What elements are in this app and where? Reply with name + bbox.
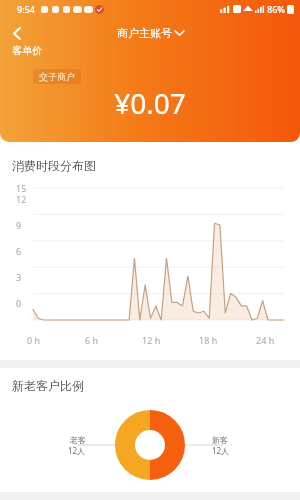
staticText: 6 h bbox=[85, 334, 142, 346]
staticText: 24 h bbox=[256, 334, 290, 346]
staticText: 86% bbox=[267, 3, 285, 15]
staticText: 12 bbox=[16, 193, 27, 205]
staticText: 新客 bbox=[212, 435, 228, 445]
staticText: 3 bbox=[16, 271, 22, 283]
staticText: 12 h bbox=[142, 334, 199, 346]
button[interactable]: 交子商户 bbox=[33, 69, 81, 84]
staticText: 18 h bbox=[199, 334, 256, 346]
staticText: 商户主账号 bbox=[117, 26, 172, 40]
staticText: 0 h bbox=[27, 334, 85, 346]
staticText: 9:54 bbox=[17, 3, 35, 15]
staticText: 老客 bbox=[70, 435, 86, 445]
staticText: 9 bbox=[16, 219, 22, 231]
staticText: 12人 bbox=[68, 445, 86, 456]
staticText: 15 bbox=[16, 182, 27, 194]
staticText: 新老客户比例 bbox=[12, 378, 84, 393]
staticText: 12人 bbox=[212, 445, 230, 456]
staticText: 消费时段分布图 bbox=[12, 158, 96, 173]
staticText: 0 bbox=[16, 297, 22, 309]
staticText: 6 bbox=[16, 245, 22, 257]
staticText: ¥0.07 bbox=[0, 84, 300, 122]
button[interactable]: 商户主账号 bbox=[117, 26, 184, 40]
staticText: 交子商户 bbox=[39, 71, 75, 82]
button[interactable]: Back bbox=[0, 18, 34, 48]
staticText: 客单价 bbox=[12, 44, 42, 57]
